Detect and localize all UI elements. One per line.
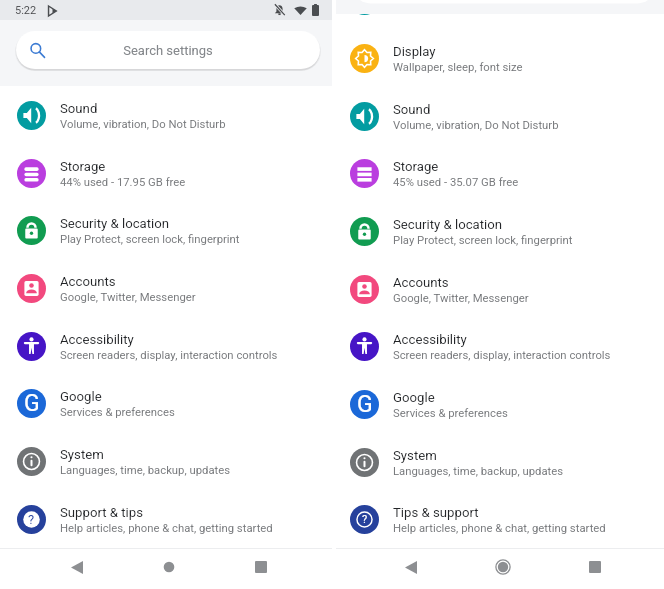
staticText: Services & preferences — [393, 407, 508, 420]
button[interactable]: Accounts — [0, 274, 332, 303]
button[interactable]: G — [336, 390, 664, 419]
staticText: Languages, time, backup, updates — [393, 465, 564, 478]
button[interactable]: Accounts — [336, 275, 664, 304]
staticText: Google, Twitter, Messenger — [60, 291, 196, 304]
button[interactable]: Storage — [336, 159, 664, 188]
button[interactable]: Security & location — [336, 217, 664, 246]
staticText: Storage — [393, 159, 439, 174]
button[interactable]: Security & location — [0, 216, 332, 245]
staticText: Storage — [60, 159, 106, 174]
staticText: Wallpaper, sleep, font size — [393, 61, 523, 74]
staticText: Tips & support — [393, 505, 479, 520]
staticText: 44% used - 17.95 GB free — [60, 176, 186, 189]
button[interactable]: Home — [145, 547, 192, 587]
staticText: Accessibility — [393, 332, 467, 347]
button[interactable]: Sound — [0, 101, 332, 130]
staticText: Security & location — [60, 216, 170, 231]
button[interactable]: Home — [479, 547, 526, 587]
staticText: Sound — [60, 101, 98, 116]
button[interactable]: Accessibility — [336, 332, 664, 361]
button[interactable]: System — [0, 447, 332, 476]
staticText: Volume, vibration, Do Not Disturb — [60, 118, 226, 131]
staticText: ? — [28, 512, 35, 527]
button[interactable] — [336, 0, 664, 15]
button[interactable]: ? — [0, 505, 332, 534]
button[interactable]: Sound — [336, 102, 664, 131]
staticText: Security & location — [393, 217, 503, 232]
button[interactable]: Back — [387, 547, 434, 587]
button[interactable]: G — [0, 389, 332, 418]
button[interactable]: Display — [336, 44, 664, 73]
staticText: Support & tips — [60, 505, 144, 520]
staticText: Accessibility — [60, 332, 134, 347]
staticText: Sound — [393, 102, 431, 117]
staticText: 45% used - 35.07 GB free — [393, 176, 519, 189]
staticText: G — [357, 391, 373, 418]
staticText: Screen readers, display, interaction con… — [393, 349, 611, 362]
staticText: Screen readers, display, interaction con… — [60, 349, 278, 362]
staticText: ? — [362, 513, 368, 526]
staticText: Google — [60, 389, 102, 404]
staticText: Search settings — [16, 43, 320, 58]
button[interactable]: System — [336, 448, 664, 477]
button[interactable]: Search settings — [16, 31, 320, 69]
staticText: System — [393, 448, 437, 463]
button[interactable]: Recent apps — [237, 547, 284, 587]
staticText: Google, Twitter, Messenger — [393, 292, 529, 305]
staticText: Display — [393, 44, 436, 59]
button[interactable]: Back — [53, 547, 100, 587]
button[interactable]: ? — [336, 505, 664, 534]
button[interactable]: Accessibility — [0, 332, 332, 361]
button[interactable]: Recent apps — [571, 547, 618, 587]
staticText: System — [60, 447, 104, 462]
staticText: Volume, vibration, Do Not Disturb — [393, 119, 559, 132]
button[interactable]: Storage — [0, 159, 332, 188]
staticText: Play Protect, screen lock, fingerprint — [393, 234, 573, 247]
staticText: 5:22 — [15, 4, 37, 17]
staticText: G — [24, 390, 40, 417]
staticText: Accounts — [60, 274, 116, 289]
staticText: Languages, time, backup, updates — [60, 464, 231, 477]
staticText: Play Protect, screen lock, fingerprint — [60, 233, 240, 246]
staticText: Help articles, phone & chat, getting sta… — [60, 522, 273, 535]
staticText: Help articles, phone & chat, getting sta… — [393, 522, 606, 535]
staticText: Accounts — [393, 275, 449, 290]
staticText: Services & preferences — [60, 406, 175, 419]
staticText: Google — [393, 390, 435, 405]
